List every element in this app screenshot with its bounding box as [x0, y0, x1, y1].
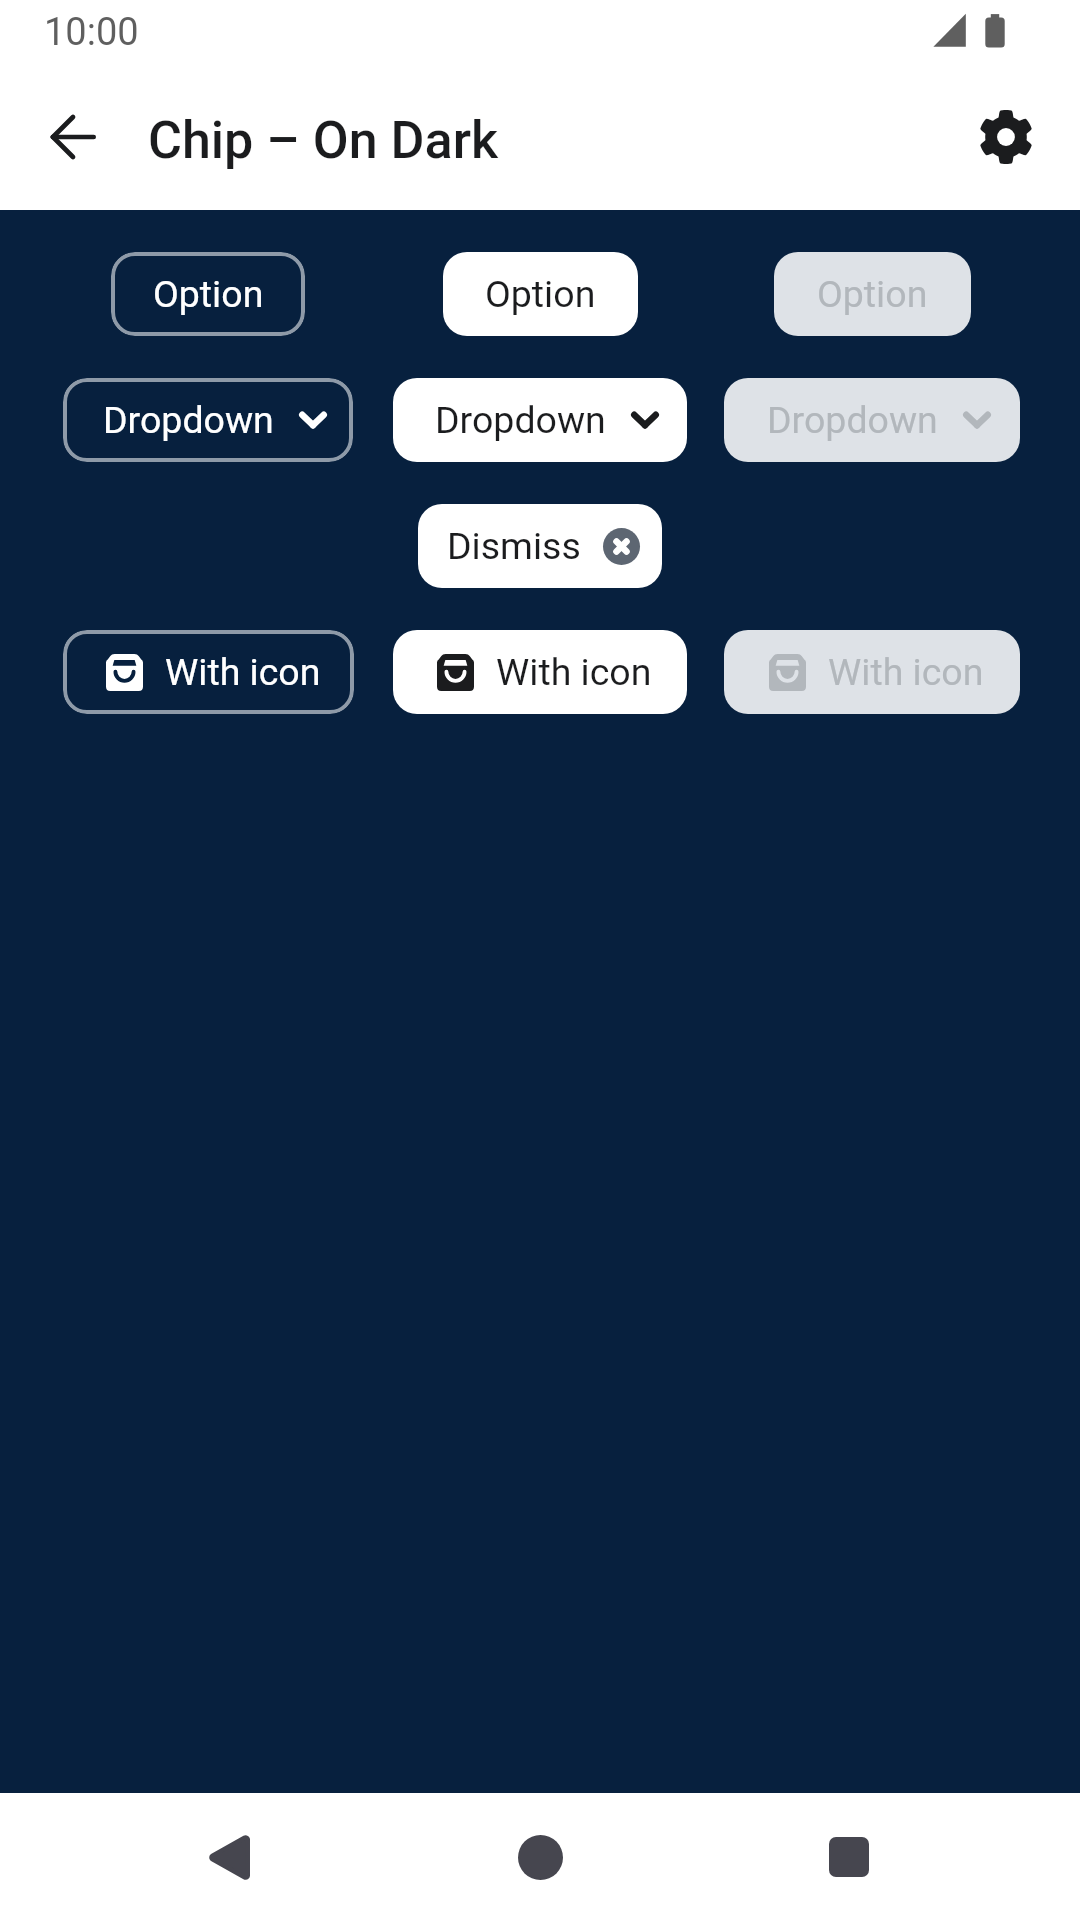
- button[interactable]: With icon: [724, 630, 1020, 714]
- staticText: Dismiss: [447, 524, 581, 568]
- button[interactable]: Recent apps: [789, 1797, 909, 1917]
- staticText: Option: [153, 272, 264, 316]
- staticText: Chip – On Dark: [148, 110, 499, 171]
- button[interactable]: Option: [111, 252, 305, 336]
- staticText: With icon: [165, 650, 321, 694]
- staticText: 10:00: [44, 10, 139, 55]
- button[interactable]: With icon: [63, 630, 354, 714]
- button[interactable]: Dropdown: [724, 378, 1020, 462]
- button[interactable]: With icon: [393, 630, 687, 714]
- staticText: With icon: [828, 650, 984, 694]
- button[interactable]: Dropdown: [63, 378, 353, 462]
- staticText: Dropdown: [435, 398, 606, 442]
- button[interactable]: Dropdown: [393, 378, 687, 462]
- staticText: Dropdown: [103, 398, 274, 442]
- button[interactable]: Home: [480, 1797, 600, 1917]
- button[interactable]: Settings: [964, 95, 1048, 179]
- staticText: Dropdown: [767, 398, 938, 442]
- button[interactable]: Back: [169, 1797, 289, 1917]
- button[interactable]: Navigate up: [31, 95, 115, 179]
- staticText: With icon: [496, 650, 652, 694]
- button[interactable]: Option: [443, 252, 638, 336]
- staticText: Option: [485, 272, 596, 316]
- staticText: Option: [817, 272, 928, 316]
- button[interactable]: Dismiss: [418, 504, 662, 588]
- button[interactable]: Option: [774, 252, 971, 336]
